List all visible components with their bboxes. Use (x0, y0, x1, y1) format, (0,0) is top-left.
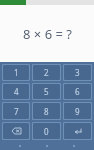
staticText: 8 × 6 = ? (23, 25, 72, 43)
staticText: 5 (44, 86, 49, 97)
button[interactable]: Backspace (3, 123, 29, 139)
button[interactable]: 9 (64, 103, 91, 119)
staticText: 6 (75, 86, 80, 97)
button[interactable]: 3 (64, 65, 91, 80)
button[interactable]: 2 (33, 65, 60, 80)
button[interactable]: Recents (67, 142, 81, 150)
button[interactable]: 5 (33, 84, 60, 99)
button[interactable]: 1 (3, 65, 29, 80)
staticText: 1 (14, 67, 19, 78)
staticText: 7 (14, 106, 19, 117)
staticText: 9 (75, 106, 80, 117)
button[interactable]: Enter (64, 123, 91, 139)
button[interactable]: 0 (33, 123, 60, 139)
staticText: 3 (75, 67, 80, 78)
button[interactable]: 6 (64, 84, 91, 99)
button[interactable]: Back (13, 142, 27, 150)
staticText: 8 (44, 106, 49, 117)
button[interactable]: 8 (33, 103, 60, 119)
staticText: 2 (44, 67, 49, 78)
button[interactable]: 7 (3, 103, 29, 119)
button[interactable]: Home (40, 142, 54, 150)
staticText: 4 (14, 86, 19, 97)
staticText: 0 (44, 126, 49, 137)
button[interactable]: 4 (3, 84, 29, 99)
